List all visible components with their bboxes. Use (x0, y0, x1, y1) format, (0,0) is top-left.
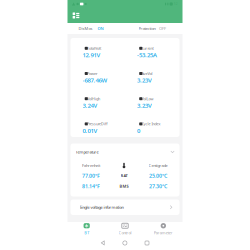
staticText: Centigrade (148, 163, 167, 168)
button[interactable]: Single voltage information (70, 199, 179, 215)
staticText: Control (118, 230, 131, 235)
staticText: PressureDiff (87, 121, 108, 126)
staticText: BMS (119, 184, 128, 189)
staticText: ON (97, 26, 103, 31)
staticText: -687.46W (82, 76, 107, 84)
button[interactable]: Control (106, 222, 144, 236)
staticText: BAT (120, 173, 127, 178)
staticText: Parameter (154, 230, 173, 235)
button[interactable]: Protection (125, 23, 182, 34)
staticText: VolHigh (87, 96, 100, 101)
staticText: BT (84, 230, 89, 235)
staticText: 77.00°F (82, 172, 100, 179)
staticText: 3.23V (137, 76, 152, 84)
staticText: Current (142, 46, 154, 51)
staticText: Single voltage information (79, 205, 123, 210)
staticText: 0.01V (82, 126, 97, 135)
staticText: 3.24V (82, 101, 97, 109)
staticText: VolLow (142, 96, 154, 101)
staticText: 3.23V (137, 101, 152, 109)
staticText: Protection (138, 26, 155, 31)
staticText: TotalVolt (87, 46, 101, 51)
staticText: DisMos (78, 26, 92, 31)
staticText: 12.91V (82, 51, 100, 59)
staticText: 0 (137, 126, 140, 135)
staticText: -53.25A (137, 51, 157, 59)
button[interactable]: Home (119, 237, 131, 249)
staticText: AveVol (142, 71, 153, 76)
staticText: 27.30°C (149, 183, 167, 190)
staticText: OFF (159, 26, 166, 31)
button[interactable]: Battery packs (70, 9, 82, 22)
staticText: Fahrenheit (82, 163, 100, 168)
button[interactable]: Back (97, 237, 109, 249)
staticText: Power (87, 71, 98, 76)
staticText: Temperature (75, 149, 98, 155)
staticText: Cycle Index (142, 121, 161, 126)
button[interactable]: Recents (141, 237, 153, 249)
button[interactable]: BT (67, 222, 106, 236)
button[interactable]: Temperature (70, 143, 179, 160)
staticText: 25.00°C (149, 172, 167, 179)
button[interactable]: DisMos (67, 23, 125, 34)
button[interactable]: Parameter (144, 222, 182, 236)
staticText: 81.14°F (82, 183, 100, 190)
